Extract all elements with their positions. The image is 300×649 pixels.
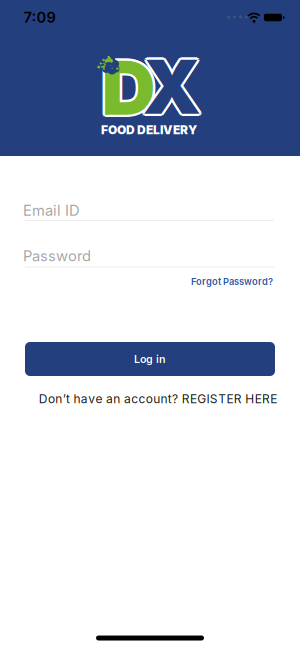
staticText: X [142, 45, 201, 133]
staticText: X [144, 44, 203, 132]
staticText: D [101, 43, 155, 132]
staticText: X [142, 40, 201, 128]
staticText: Log in [134, 353, 166, 365]
staticText: D [100, 45, 154, 133]
button[interactable]: Email ID [23, 195, 273, 225]
staticText: D [101, 46, 155, 134]
staticText: D [104, 43, 158, 132]
staticText: FOOD DELIVERY [101, 123, 197, 137]
button[interactable]: Don’t have an account? REGISTER HERE [39, 392, 277, 406]
staticText: X [144, 41, 203, 129]
staticText: D [99, 43, 153, 132]
staticText: Forgot Password? [191, 276, 273, 287]
staticText: X [142, 42, 201, 131]
staticText: X [140, 42, 199, 131]
staticText: Email ID [23, 202, 80, 219]
staticText: X [141, 41, 200, 129]
button[interactable]: Log in [25, 342, 275, 376]
staticText: D [103, 45, 157, 133]
button[interactable]: Forgot Password? [23, 276, 273, 287]
staticText: D [100, 42, 154, 130]
staticText: X [141, 44, 200, 132]
staticText: 7:09 [23, 9, 55, 26]
button[interactable]: Password [23, 241, 273, 271]
staticText: D [101, 41, 155, 129]
staticText: X [145, 42, 204, 131]
staticText: Don’t have an account? REGISTER HERE [39, 392, 277, 406]
staticText: Password [23, 247, 91, 265]
staticText: D [103, 42, 157, 130]
